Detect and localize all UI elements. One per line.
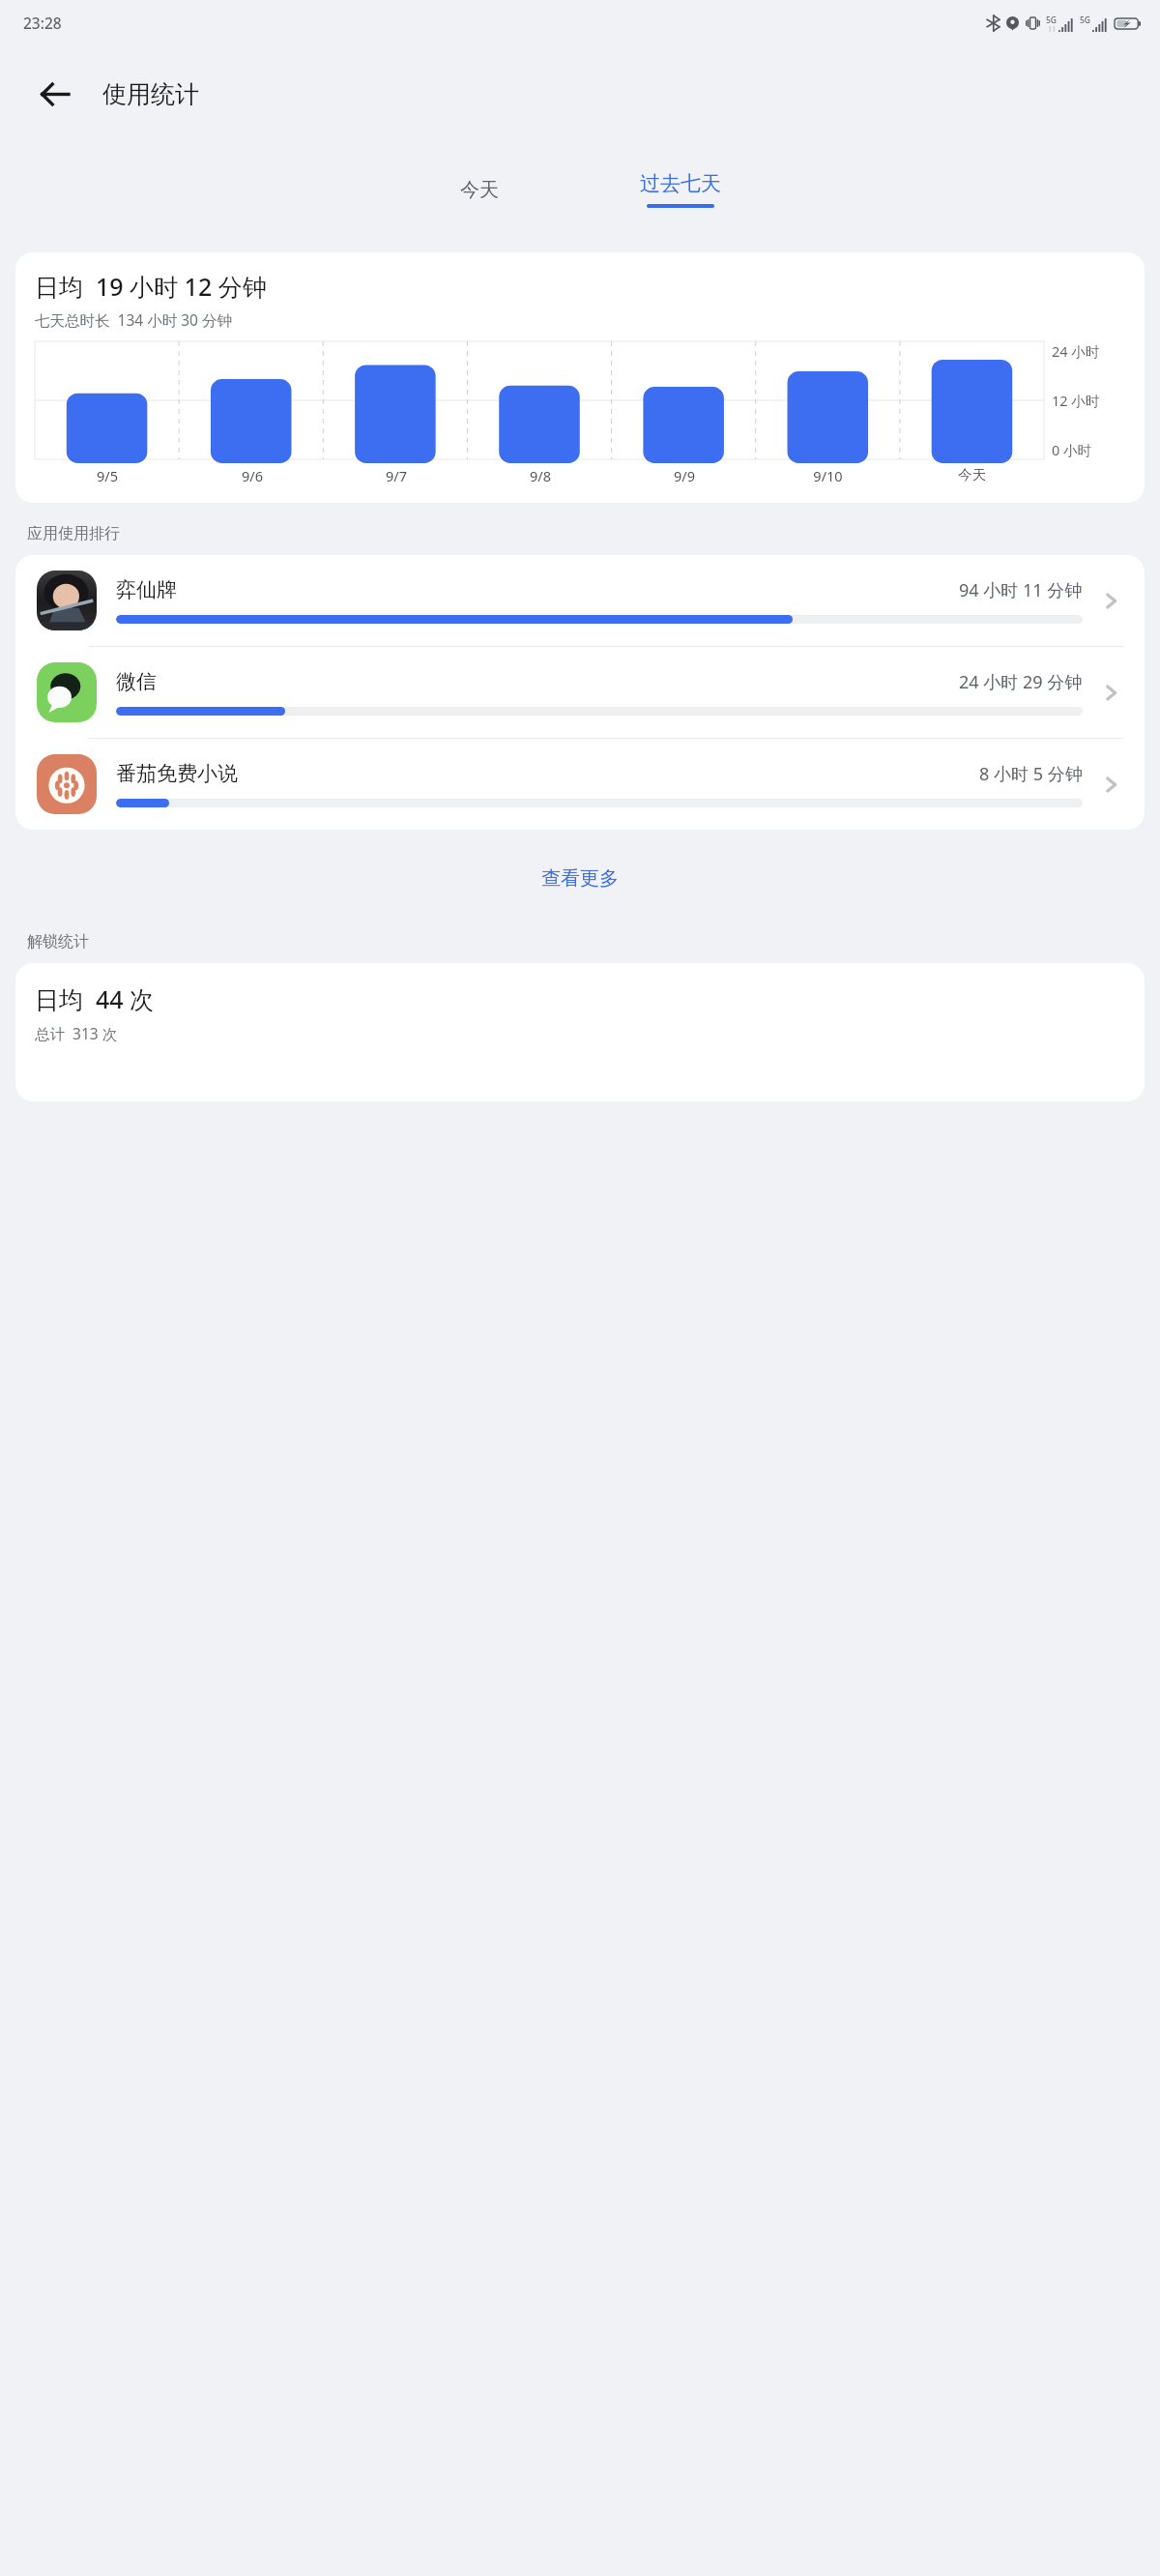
staticText: 24 小时 bbox=[1052, 341, 1100, 361]
staticText: 8 小时 5 分钟 bbox=[979, 762, 1083, 786]
staticText: 23:28 bbox=[23, 13, 62, 33]
staticText: 9/8 bbox=[530, 466, 551, 485]
staticText: 9/9 bbox=[674, 466, 695, 485]
staticText: 0 小时 bbox=[1052, 440, 1092, 459]
staticText: 总计 313 次 bbox=[35, 1023, 118, 1043]
staticText: 弈仙牌 bbox=[116, 577, 177, 602]
staticText: 94 小时 11 分钟 bbox=[959, 578, 1083, 602]
other: Details bbox=[1094, 676, 1127, 709]
staticText: 使用统计 bbox=[102, 79, 199, 109]
staticText: 应用使用排行 bbox=[27, 524, 120, 543]
staticText: 七天总时长 134 小时 30 分钟 bbox=[35, 309, 232, 330]
button[interactable]: 微信 bbox=[15, 647, 1145, 738]
staticText: 解锁统计 bbox=[27, 932, 89, 951]
staticText: 9/5 bbox=[97, 466, 118, 485]
staticText: 9/7 bbox=[386, 466, 407, 485]
staticText: 今天 bbox=[958, 466, 986, 483]
staticText: 番茄免费小说 bbox=[116, 761, 238, 786]
staticText: 日均 19 小时 12 分钟 bbox=[35, 270, 267, 303]
other: Details bbox=[1094, 768, 1127, 801]
staticText: 24 小时 29 分钟 bbox=[959, 670, 1083, 694]
button[interactable]: 日均 44 次 bbox=[15, 963, 1145, 1101]
staticText: 12 小时 bbox=[1052, 391, 1100, 410]
staticText: 5G bbox=[1046, 15, 1058, 26]
other: Details bbox=[1094, 584, 1127, 617]
staticText: 微信 bbox=[116, 669, 157, 694]
button[interactable]: 弈仙牌 bbox=[15, 555, 1145, 646]
button[interactable]: Back bbox=[25, 65, 83, 123]
staticText: 9/10 bbox=[813, 466, 843, 485]
button[interactable]: 日均 19 小时 12 分钟 bbox=[15, 252, 1145, 503]
staticText: 日均 44 次 bbox=[35, 982, 155, 1015]
staticText: 过去七天 bbox=[640, 171, 721, 196]
staticText: 今天 bbox=[460, 178, 499, 202]
staticText: 9/6 bbox=[242, 466, 263, 485]
staticText: 查看更多 bbox=[541, 866, 619, 891]
button[interactable]: 今天 bbox=[402, 142, 557, 237]
button[interactable]: 过去七天 bbox=[603, 142, 758, 237]
staticText: 5G bbox=[1080, 15, 1091, 26]
button[interactable]: 查看更多 bbox=[0, 851, 1160, 905]
button[interactable]: 番茄免费小说 bbox=[15, 739, 1145, 830]
